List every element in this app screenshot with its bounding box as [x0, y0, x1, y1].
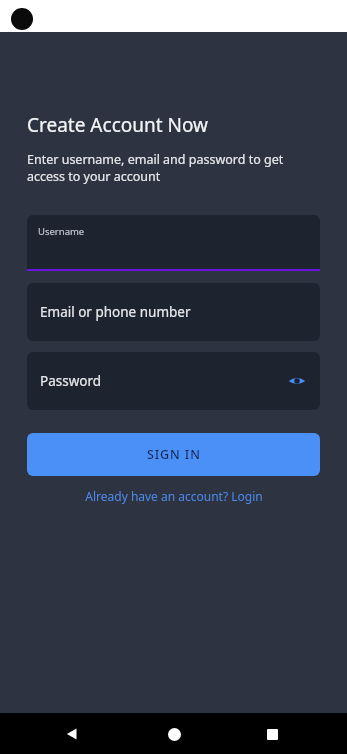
button[interactable]: Email or phone number: [27, 283, 320, 341]
staticText: Enter username, email and password to ge…: [27, 151, 284, 184]
button[interactable]: Username: [27, 215, 320, 271]
staticText: Already have an account? Login: [85, 488, 263, 504]
button[interactable]: Show password: [281, 365, 313, 397]
button[interactable]: SIGN IN: [27, 433, 320, 476]
staticText: Username: [38, 225, 85, 238]
button[interactable]: Password: [27, 352, 320, 410]
button[interactable]: Home: [156, 716, 192, 752]
staticText: Email or phone number: [40, 303, 191, 321]
button[interactable]: Already have an account? Login: [27, 485, 320, 507]
button[interactable]: Back: [54, 716, 90, 752]
staticText: Password: [40, 372, 102, 390]
staticText: Create Account Now: [27, 112, 209, 138]
staticText: SIGN IN: [147, 446, 201, 463]
button[interactable]: Recent apps: [254, 716, 290, 752]
